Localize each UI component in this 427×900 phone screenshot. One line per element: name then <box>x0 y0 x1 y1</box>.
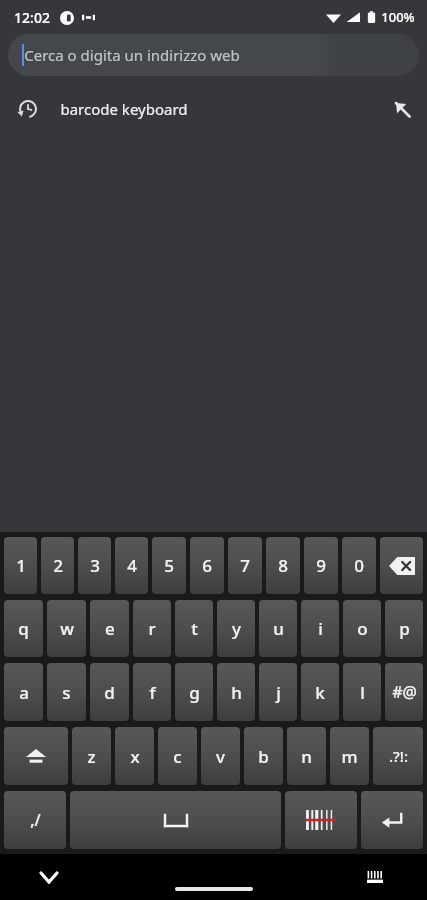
button[interactable]: v <box>201 727 240 785</box>
staticText: d <box>104 681 115 704</box>
staticText: barcode keyboard <box>60 99 188 119</box>
staticText: 3 <box>90 554 100 577</box>
staticText: 100% <box>381 8 415 26</box>
button[interactable]: j <box>259 663 297 721</box>
button[interactable]: 3 <box>78 537 111 594</box>
button[interactable]: g <box>175 663 213 721</box>
staticText: f <box>149 681 156 704</box>
button[interactable]: x <box>115 727 154 785</box>
staticText: Cerca o digita un indirizzo web <box>24 45 240 65</box>
staticText: y <box>232 617 241 640</box>
staticText: 7 <box>240 554 250 577</box>
staticText: t <box>191 617 198 640</box>
button[interactable]: n <box>287 727 326 785</box>
button[interactable]: d <box>90 663 129 721</box>
button[interactable]: .?!: <box>373 727 423 785</box>
button[interactable]: Backspace <box>380 537 423 594</box>
button[interactable]: Insert suggestion <box>381 88 423 130</box>
button[interactable]: w <box>47 600 86 657</box>
staticText: s <box>62 681 71 704</box>
button[interactable]: Shift <box>4 727 68 785</box>
button[interactable]: y <box>217 600 255 657</box>
staticText: e <box>105 617 115 640</box>
staticText: 0 <box>354 554 364 577</box>
button[interactable]: 4 <box>115 537 148 594</box>
button[interactable]: 1 <box>4 537 37 594</box>
staticText: 2 <box>53 554 63 577</box>
button[interactable]: k <box>301 663 339 721</box>
staticText: w <box>60 617 74 640</box>
staticText: 6 <box>202 554 212 577</box>
staticText: p <box>399 617 410 640</box>
staticText: u <box>273 617 284 640</box>
button[interactable]: l <box>343 663 381 721</box>
button[interactable]: ,/ <box>4 791 66 849</box>
button[interactable]: p <box>385 600 423 657</box>
staticText: x <box>130 745 140 768</box>
staticText: o <box>357 617 368 640</box>
staticText: h <box>231 681 242 704</box>
staticText: b <box>258 745 269 768</box>
staticText: r <box>148 617 156 640</box>
staticText: 8 <box>278 554 288 577</box>
button[interactable]: 2 <box>41 537 74 594</box>
button[interactable]: c <box>158 727 197 785</box>
button[interactable]: Space <box>70 791 281 849</box>
button[interactable]: Cerca o digita un indirizzo web <box>8 34 419 76</box>
staticText: m <box>341 745 358 768</box>
button[interactable]: 8 <box>266 537 300 594</box>
button[interactable]: q <box>4 600 43 657</box>
staticText: 4 <box>127 554 137 577</box>
button[interactable]: u <box>259 600 297 657</box>
button[interactable]: o <box>343 600 381 657</box>
staticText: 1 <box>16 554 26 577</box>
button[interactable]: 5 <box>152 537 186 594</box>
staticText: 9 <box>316 554 326 577</box>
staticText: i <box>318 617 323 640</box>
button[interactable]: r <box>133 600 171 657</box>
button[interactable]: barcode keyboard <box>0 86 427 132</box>
staticText: k <box>315 681 325 704</box>
staticText: j <box>276 681 281 704</box>
button[interactable]: z <box>72 727 111 785</box>
button[interactable]: t <box>175 600 213 657</box>
staticText: 5 <box>164 554 174 577</box>
staticText: ,/ <box>30 809 41 831</box>
button[interactable]: Scan barcode <box>285 791 357 849</box>
staticText: a <box>19 681 29 704</box>
staticText: z <box>87 745 96 768</box>
staticText: .?!: <box>389 746 408 766</box>
button[interactable]: f <box>133 663 171 721</box>
staticText: g <box>189 681 200 704</box>
staticText: l <box>360 681 365 704</box>
staticText: #@ <box>392 681 417 703</box>
button[interactable]: Enter <box>361 791 423 849</box>
staticText: v <box>216 745 225 768</box>
button[interactable]: 9 <box>304 537 338 594</box>
button[interactable]: a <box>4 663 43 721</box>
button[interactable]: 7 <box>228 537 262 594</box>
button[interactable]: i <box>301 600 339 657</box>
staticText: 12:02 <box>14 8 50 27</box>
button[interactable]: #@ <box>385 663 423 721</box>
button[interactable]: h <box>217 663 255 721</box>
button[interactable]: Switch keyboard <box>358 860 392 894</box>
staticText: n <box>301 745 312 768</box>
button[interactable]: 6 <box>190 537 224 594</box>
staticText: c <box>173 745 182 768</box>
staticText: q <box>18 617 29 640</box>
button[interactable]: b <box>244 727 283 785</box>
button[interactable]: 0 <box>342 537 376 594</box>
button[interactable]: Hide keyboard <box>32 860 66 894</box>
button[interactable]: s <box>47 663 86 721</box>
button[interactable]: e <box>90 600 129 657</box>
button[interactable]: m <box>330 727 369 785</box>
